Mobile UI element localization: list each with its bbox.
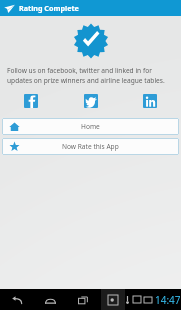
staticText: Follow us on facebook, twitter and linke… <box>7 66 174 85</box>
button[interactable]: Now Rate this App <box>2 138 179 155</box>
other: App logo <box>3 2 15 14</box>
button[interactable]: LinkedIn <box>143 94 157 108</box>
button[interactable]: Home <box>2 118 179 135</box>
button[interactable]: Screenshot <box>101 289 125 310</box>
staticText: Home <box>81 122 100 131</box>
staticText: Now Rate this App <box>62 142 119 151</box>
staticText: Rating Complete <box>19 3 79 13</box>
button[interactable]: Recents <box>75 292 91 308</box>
button[interactable]: Facebook <box>24 94 38 108</box>
staticText: 14:47 <box>155 293 181 307</box>
button[interactable]: Back <box>9 292 25 308</box>
button[interactable]: Home <box>42 292 58 308</box>
button[interactable]: Twitter <box>84 94 98 108</box>
